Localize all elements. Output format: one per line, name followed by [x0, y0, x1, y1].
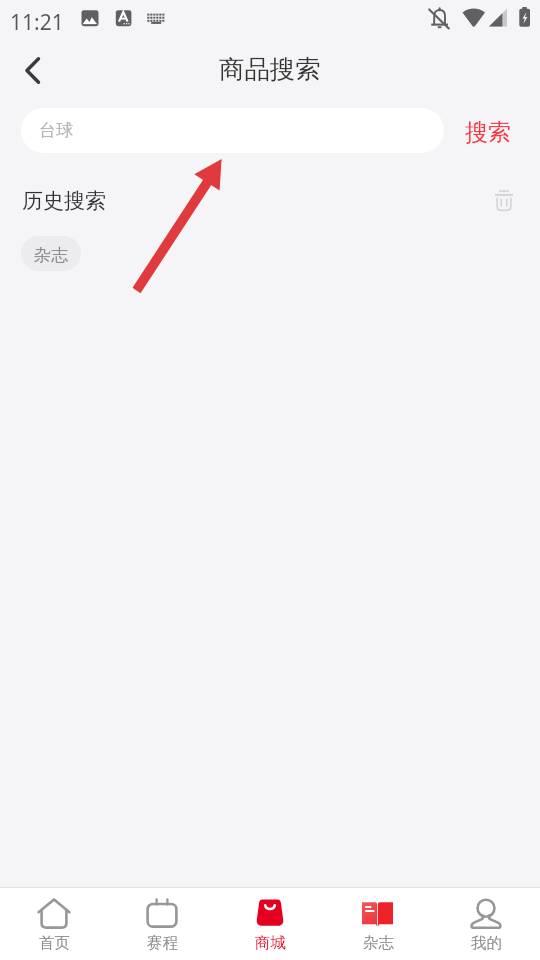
staticText: 台球	[39, 120, 73, 141]
button[interactable]: 搜索	[454, 110, 522, 155]
button[interactable]: 台球	[21, 108, 444, 153]
staticText: 历史搜索	[22, 188, 106, 214]
button[interactable]: Clear search history	[487, 184, 521, 218]
staticText: 我的	[471, 933, 502, 953]
staticText: 首页	[39, 933, 70, 953]
staticText: 搜索	[465, 118, 511, 147]
staticText: 赛程	[147, 933, 178, 953]
button[interactable]: 赛程	[108, 888, 216, 960]
button[interactable]: Back	[8, 44, 60, 96]
staticText: 商城	[255, 933, 286, 953]
button[interactable]: 我的	[432, 888, 540, 960]
staticText: 杂志	[34, 245, 68, 266]
staticText: 商品搜索	[219, 54, 321, 86]
button[interactable]: 杂志	[324, 888, 432, 960]
button[interactable]: 杂志	[21, 236, 81, 271]
staticText: 杂志	[363, 933, 394, 953]
staticText: 11:21	[10, 8, 64, 37]
button[interactable]: 商城	[216, 888, 324, 960]
button[interactable]: 首页	[0, 888, 108, 960]
